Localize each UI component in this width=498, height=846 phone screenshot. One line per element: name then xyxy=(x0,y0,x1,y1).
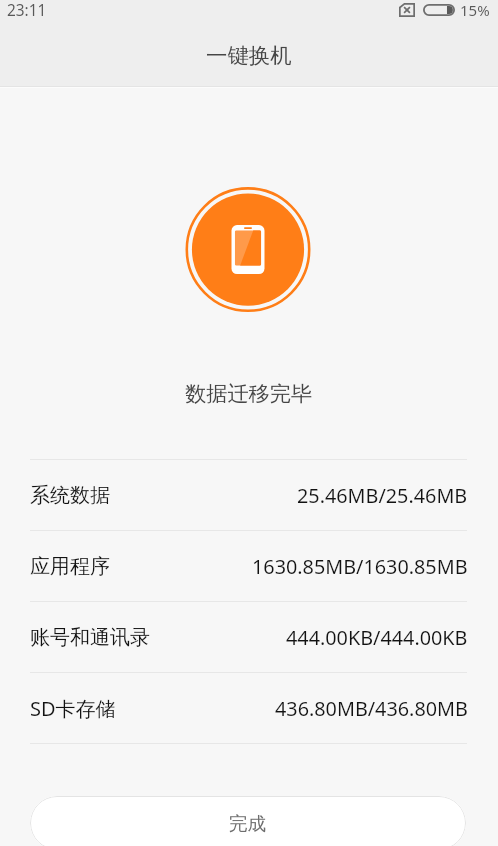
staticText: 15% xyxy=(460,0,490,20)
button[interactable]: 系统数据 xyxy=(0,460,498,530)
staticText: 系统数据 xyxy=(30,483,110,508)
button[interactable]: SD卡存储 xyxy=(0,673,498,743)
staticText: SD卡存储 xyxy=(30,695,116,722)
staticText: 444.00KB/444.00KB xyxy=(286,624,468,651)
button[interactable]: 账号和通讯录 xyxy=(0,602,498,672)
button[interactable]: 完成 xyxy=(30,796,466,846)
button[interactable]: 应用程序 xyxy=(0,531,498,601)
staticText: 25.46MB/25.46MB xyxy=(297,482,468,509)
staticText: 账号和通讯录 xyxy=(30,625,150,650)
staticText: 1630.85MB/1630.85MB xyxy=(252,553,468,580)
staticText: 436.80MB/436.80MB xyxy=(275,695,468,722)
other: Battery 15 percent xyxy=(423,4,455,16)
staticText: 应用程序 xyxy=(30,554,110,579)
staticText: 完成 xyxy=(229,812,267,835)
staticText: 23:11 xyxy=(7,0,47,20)
staticText: 数据迁移完毕 xyxy=(185,381,313,408)
other: No SIM card xyxy=(399,3,415,17)
staticText: 一键换机 xyxy=(206,42,292,69)
